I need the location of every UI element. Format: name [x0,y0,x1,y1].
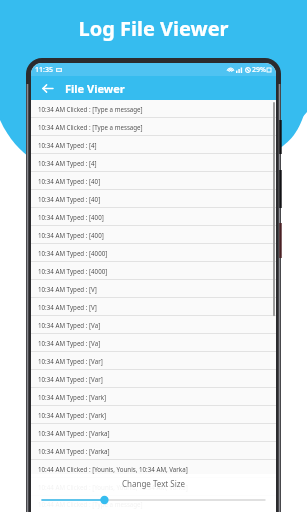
staticText: 10:34 AM Clicked : [Type a message] [38,123,143,131]
staticText: 10:34 AM Typed : [Varka] [38,429,110,437]
staticText: 10:44 AM Clicked : [Younis, Younis, 10:3… [38,465,188,473]
staticText: 10:34 AM Typed : [V] [38,303,97,311]
button[interactable]: Back [39,80,55,96]
staticText: 10:34 AM Typed : [Varka] [38,447,110,455]
button[interactable]: 10:34 AM Typed : [Vark] [31,388,276,405]
button[interactable]: 10:34 AM Typed : [400] [31,208,276,225]
button[interactable]: 10:34 AM Typed : [Varka] [31,442,276,459]
button[interactable]: 10:34 AM Typed : [40] [31,172,276,189]
staticText: 10:34 AM Typed : [40] [38,177,101,185]
button[interactable]: 10:34 AM Clicked : [Type a message] [31,118,276,135]
button[interactable]: 10:34 AM Typed : [400] [31,226,276,243]
staticText: 10:34 AM Typed : [400] [38,213,104,221]
button[interactable]: 10:34 AM Typed : [Va] [31,316,276,333]
staticText: 11:35 [35,65,53,75]
button[interactable]: 10:34 AM Typed : [V] [31,298,276,315]
button[interactable]: 10:34 AM Typed : [Vark] [31,406,276,423]
staticText: 10:34 AM Typed : [Vark] [38,393,107,401]
button[interactable]: 10:34 AM Clicked : [Type a message] [31,100,276,117]
button[interactable]: 10:34 AM Typed : [40] [31,190,276,207]
staticText: 10:44 AM Clicked : [Type a message] [38,500,143,508]
staticText: 29% [252,65,266,75]
button[interactable]: 10:34 AM Typed : [4] [31,154,276,171]
staticText: 10:34 AM Typed : [4] [38,159,97,167]
staticText: 10:34 AM Typed : [40] [38,195,101,203]
button[interactable]: 10:34 AM Typed : [4000] [31,244,276,261]
button[interactable]: 10:34 AM Typed : [Varka] [31,424,276,441]
button[interactable]: 10:44 AM Clicked : [Younis, Younis, 10:3… [31,460,276,477]
staticText: 10:34 AM Typed : [V] [38,285,97,293]
staticText: 10:34 AM Typed : [Var] [38,375,103,383]
staticText: 10:34 AM Clicked : [Type a message] [38,105,143,113]
staticText: Change Text Size [31,478,276,489]
staticText: 10:34 AM Typed : [Vark] [38,411,107,419]
staticText: 10:34 AM Typed : [4000] [38,249,108,257]
button[interactable]: 10:34 AM Typed : [4000] [31,262,276,279]
button[interactable]: 10:34 AM Typed : [Var] [31,352,276,369]
button[interactable]: 10:34 AM Typed : [4] [31,136,276,153]
button[interactable]: Text size slider [31,494,276,506]
button[interactable]: 10:34 AM Typed : [Var] [31,370,276,387]
staticText: 10:34 AM Typed : [4] [38,141,97,149]
staticText: 10:34 AM Typed : [Var] [38,357,103,365]
staticText: 10:34 AM Typed : [4000] [38,267,108,275]
staticText: 10:44 AM Clicked : [Younis, Younis, 10:3… [38,483,188,491]
button[interactable]: 10:34 AM Typed : [V] [31,280,276,297]
button[interactable]: 10:34 AM Typed : [Va] [31,334,276,351]
button[interactable]: 10:44 AM Clicked : [Type a message] [31,496,276,512]
staticText: Log File Viewer [78,15,229,42]
staticText: 10:34 AM Typed : [Va] [38,339,101,347]
staticText: 10:34 AM Typed : [400] [38,231,104,239]
staticText: 10:34 AM Typed : [Va] [38,321,101,329]
button[interactable]: 10:44 AM Clicked : [Younis, Younis, 10:3… [31,478,276,495]
staticText: File Viewer [65,81,125,96]
